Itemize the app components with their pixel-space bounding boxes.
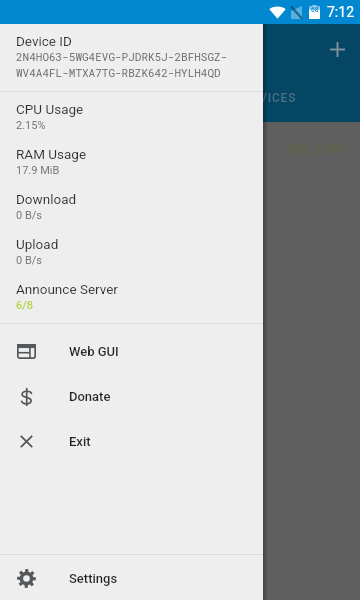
staticText: 2N4HO63-5WG4EVG-PJDRK5J-2BFHSGZ- [16,49,228,64]
staticText: Settings [69,571,118,586]
staticText: Idle (100%) [289,142,349,156]
staticText: 68 [311,6,319,14]
staticText: RAM Usage [16,146,87,162]
button[interactable]: Settings [0,556,263,600]
staticText: CPU Usage [16,101,84,117]
staticText: 17.9 MiB [16,164,60,177]
button[interactable]: Add folder [314,26,360,73]
staticText: 7:12 [327,4,354,20]
staticText: Upload [16,236,59,252]
button[interactable]: Donate [0,374,263,419]
staticText: WV4A4FL-MTXA7TG-RBZK642-HYLH4QD [16,65,221,80]
staticText: Web GUI [69,344,119,359]
staticText: Donate [69,389,111,404]
staticText: 0 B/s [16,254,42,267]
staticText: 0 B/s [16,209,42,222]
staticText: Exit [69,434,91,449]
staticText: Device ID [16,33,72,49]
staticText: 2.15% [16,119,46,132]
button[interactable]: Exit [0,419,263,464]
button[interactable]: Web GUI [0,329,263,374]
staticText: DEVICES [243,91,297,105]
staticText: Download [16,191,77,207]
staticText: 6/8 [16,299,33,312]
button[interactable]: DEVICES [206,74,334,122]
staticText: Announce Server [16,281,118,297]
